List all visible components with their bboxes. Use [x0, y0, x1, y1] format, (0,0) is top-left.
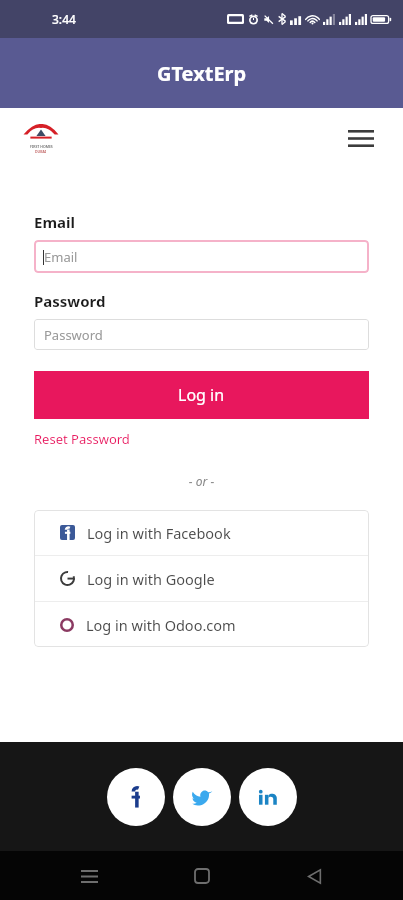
- button[interactable]: Log in with Odoo.com: [34, 602, 369, 647]
- staticText: GTextErp: [157, 60, 247, 87]
- button[interactable]: Open menu: [339, 116, 383, 160]
- staticText: Password: [44, 326, 103, 344]
- staticText: Log in with Facebook: [87, 523, 231, 543]
- staticText: FIRST HOMES: [30, 144, 53, 149]
- button[interactable]: Home: [178, 852, 226, 900]
- staticText: Log in with Odoo.com: [86, 615, 236, 635]
- staticText: Password: [34, 291, 106, 311]
- staticText: Email: [34, 212, 75, 232]
- button[interactable]: Back: [290, 852, 338, 900]
- button[interactable]: Twitter: [173, 768, 231, 826]
- button[interactable]: LinkedIn: [239, 768, 297, 826]
- button[interactable]: Recent apps: [65, 852, 113, 900]
- button[interactable]: Email: [34, 240, 369, 273]
- button[interactable]: Password: [34, 319, 369, 350]
- button[interactable]: Log in with Facebook: [34, 510, 369, 555]
- staticText: Reset Password: [34, 430, 130, 448]
- button[interactable]: Reset Password: [34, 430, 130, 448]
- staticText: Email: [44, 248, 78, 266]
- staticText: Log in with Google: [87, 569, 215, 589]
- button[interactable]: Facebook: [107, 768, 165, 826]
- staticText: - or -: [34, 473, 369, 489]
- staticText: DUBAI: [35, 149, 47, 154]
- staticText: 3:44: [52, 11, 76, 27]
- button[interactable]: Log in: [34, 371, 369, 419]
- staticText: Log in: [178, 384, 225, 406]
- button[interactable]: Log in with Google: [34, 556, 369, 601]
